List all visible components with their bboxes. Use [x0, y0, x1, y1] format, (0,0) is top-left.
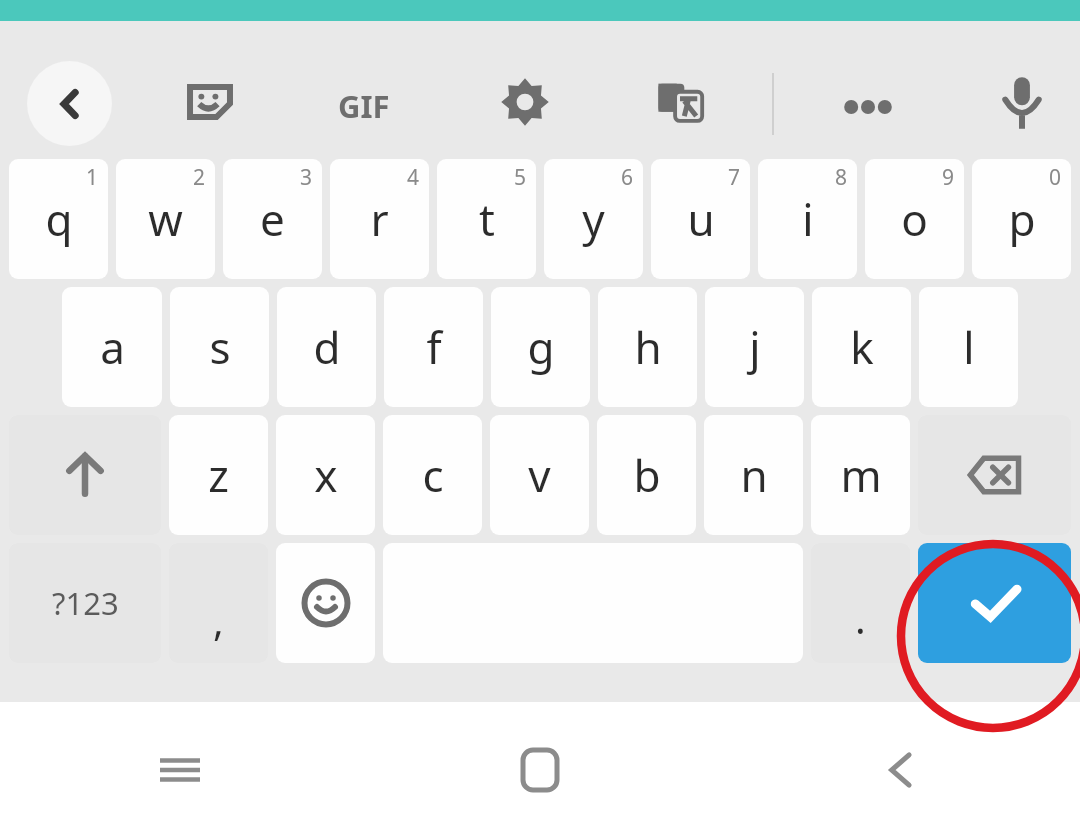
staticText: 5	[514, 163, 527, 192]
button[interactable]: ,	[169, 543, 268, 663]
staticText: i	[802, 189, 814, 249]
staticText: c	[422, 445, 444, 505]
button[interactable]: a	[62, 287, 162, 407]
staticText: 3	[300, 163, 313, 192]
button[interactable]: More options	[832, 71, 904, 143]
button[interactable]: Enter	[918, 543, 1071, 663]
staticText: t	[479, 189, 495, 249]
staticText: 6	[621, 163, 634, 192]
staticText: 2	[193, 163, 206, 192]
staticText: f	[426, 317, 442, 377]
button[interactable]: Emoji	[276, 543, 375, 663]
button[interactable]: Home	[360, 702, 720, 837]
button[interactable]: 6	[544, 159, 643, 279]
button[interactable]: Translate	[644, 71, 716, 133]
button[interactable]: .	[811, 543, 910, 663]
button[interactable]: z	[169, 415, 268, 535]
button[interactable]: 9	[865, 159, 964, 279]
button[interactable]: k	[812, 287, 911, 407]
staticText: n	[740, 445, 768, 505]
button[interactable]: l	[919, 287, 1018, 407]
staticText: j	[749, 317, 761, 377]
staticText: z	[208, 445, 229, 505]
staticText: GIF	[338, 85, 390, 127]
staticText: 8	[835, 163, 848, 192]
button[interactable]: 0	[972, 159, 1071, 279]
staticText: 9	[942, 163, 955, 192]
button[interactable]: x	[276, 415, 375, 535]
button[interactable]: d	[277, 287, 376, 407]
button[interactable]: 3	[223, 159, 322, 279]
staticText: q	[45, 189, 73, 249]
button[interactable]: Shift	[9, 415, 161, 535]
button[interactable]: 8	[758, 159, 857, 279]
staticText: y	[582, 189, 605, 249]
button[interactable]: s	[170, 287, 269, 407]
staticText: e	[260, 189, 285, 249]
button[interactable]: b	[597, 415, 696, 535]
button[interactable]: GIF	[328, 75, 400, 137]
button[interactable]: n	[704, 415, 803, 535]
button[interactable]: Back	[720, 702, 1080, 837]
staticText: r	[370, 189, 389, 249]
staticText: w	[148, 189, 183, 249]
staticText: 0	[1049, 163, 1062, 192]
button[interactable]: 4	[330, 159, 429, 279]
button[interactable]: 5	[437, 159, 536, 279]
button[interactable]: Settings	[489, 71, 561, 133]
button[interactable]: 1	[9, 159, 108, 279]
staticText: s	[209, 317, 231, 377]
button[interactable]: j	[705, 287, 804, 407]
staticText: d	[313, 317, 341, 377]
button[interactable]: c	[383, 415, 482, 535]
staticText: 1	[86, 163, 99, 192]
staticText: ?123	[52, 582, 119, 624]
button[interactable]: h	[598, 287, 697, 407]
staticText: b	[633, 445, 661, 505]
staticText: h	[634, 317, 662, 377]
button[interactable]: 7	[651, 159, 750, 279]
button[interactable]: g	[491, 287, 590, 407]
button[interactable]: ?123	[9, 543, 161, 663]
staticText: x	[314, 445, 338, 505]
staticText: v	[528, 445, 551, 505]
button[interactable]: Stickers	[174, 71, 246, 133]
staticText: l	[963, 317, 975, 377]
staticText: o	[901, 189, 928, 249]
staticText: g	[527, 317, 555, 377]
button[interactable]: v	[490, 415, 589, 535]
button[interactable]: m	[811, 415, 910, 535]
staticText: u	[687, 189, 715, 249]
button[interactable]: Voice input	[986, 67, 1058, 139]
button[interactable]: Back	[27, 61, 112, 146]
button[interactable]: GIF	[328, 75, 400, 137]
staticText: ,	[213, 593, 224, 647]
button[interactable]: 2	[116, 159, 215, 279]
staticText: m	[840, 445, 882, 505]
staticText: 7	[728, 163, 741, 192]
staticText: k	[850, 317, 874, 377]
staticText: 4	[407, 163, 420, 192]
staticText: a	[100, 317, 125, 377]
button[interactable]: f	[384, 287, 483, 407]
staticText: .	[855, 591, 866, 645]
staticText: p	[1008, 189, 1036, 249]
button[interactable]: Backspace	[918, 415, 1071, 535]
button[interactable]: Recent apps	[0, 702, 360, 837]
